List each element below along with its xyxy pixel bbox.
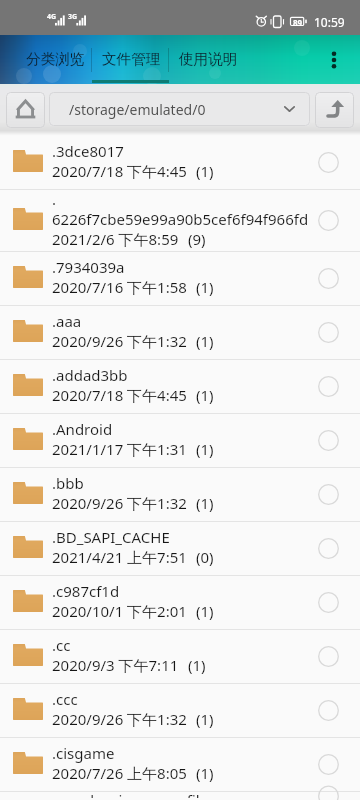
button[interactable]: . [0, 190, 360, 252]
staticText: 分类浏览 [26, 50, 85, 68]
staticText: (1) [196, 601, 214, 621]
staticText: (1) [196, 709, 214, 729]
button[interactable]: .Android [0, 414, 360, 468]
staticText: (1) [196, 385, 214, 405]
staticText: (1) [196, 439, 214, 459]
staticText: 2020/7/18 下午4:45 [52, 385, 187, 405]
button[interactable]: .bbb [0, 468, 360, 522]
button[interactable]: .cisgame [0, 738, 360, 792]
staticText: 文件管理 [102, 50, 161, 68]
staticText: .com.kwai.weapon.file [52, 790, 209, 798]
staticText: .cisgame [52, 743, 115, 763]
button[interactable]: 分类浏览 [17, 37, 94, 81]
staticText: . [52, 189, 57, 209]
staticText: 2021/2/6 下午8:59 [52, 229, 179, 249]
staticText: (1) [196, 331, 214, 351]
staticText: .bbb [52, 473, 84, 493]
staticText: 2020/9/26 下午1:32 [52, 709, 187, 729]
staticText: (1) [196, 161, 214, 181]
staticText: 89 [293, 17, 303, 28]
staticText: (1) [188, 655, 206, 675]
button[interactable]: 使用说明 [170, 37, 247, 81]
button[interactable]: .addad3bb [0, 360, 360, 414]
staticText: 2020/10/1 下午2:01 [52, 601, 187, 621]
button[interactable]: More options [320, 40, 348, 80]
staticText: 6226f7cbe59e99a90b5cef6f94f966fd [52, 209, 309, 229]
staticText: (0) [196, 547, 214, 567]
staticText: 2020/7/16 下午1:58 [52, 277, 187, 297]
button[interactable]: .7934039a [0, 252, 360, 306]
staticText: .addad3bb [52, 365, 128, 385]
staticText: (1) [196, 763, 214, 783]
button[interactable]: Home [6, 92, 45, 128]
staticText: (9) [188, 229, 206, 249]
button[interactable]: .3dce8017 [0, 136, 360, 190]
staticText: 2020/9/26 下午1:32 [52, 331, 187, 351]
staticText: 2021/1/17 下午1:31 [52, 439, 187, 459]
button[interactable]: .ccc [0, 684, 360, 738]
staticText: .c987cf1d [52, 581, 120, 601]
button[interactable]: .com.kwai.weapon.file [0, 792, 360, 800]
staticText: .BD_SAPI_CACHE [52, 527, 170, 547]
button[interactable]: .aaa [0, 306, 360, 360]
button[interactable]: .c987cf1d [0, 576, 360, 630]
staticText: .7934039a [52, 257, 125, 277]
staticText: .cc [52, 635, 71, 655]
staticText: .3dce8017 [52, 141, 124, 161]
staticText: 10:59 [314, 14, 345, 30]
staticText: 2020/9/3 下午7:11 [52, 655, 179, 675]
staticText: 使用说明 [179, 50, 238, 68]
button[interactable]: .BD_SAPI_CACHE [0, 522, 360, 576]
button[interactable]: .cc [0, 630, 360, 684]
staticText: (1) [196, 493, 214, 513]
staticText: .ccc [52, 689, 78, 709]
staticText: 2020/9/26 下午1:32 [52, 493, 187, 513]
staticText: .aaa [52, 311, 82, 331]
button[interactable]: 文件管理 [93, 37, 170, 81]
staticText: 4G [47, 12, 57, 22]
button[interactable]: Up one level [315, 92, 354, 128]
button[interactable]: /storage/emulated/0 [49, 92, 310, 126]
staticText: 2020/7/26 上午8:05 [52, 763, 187, 783]
staticText: 2020/7/18 下午4:45 [52, 161, 187, 181]
staticText: 2021/4/21 上午7:51 [52, 547, 187, 567]
staticText: .Android [52, 419, 113, 439]
staticText: /storage/emulated/0 [69, 100, 206, 119]
staticText: (1) [196, 277, 214, 297]
staticText: 3G [68, 12, 78, 22]
